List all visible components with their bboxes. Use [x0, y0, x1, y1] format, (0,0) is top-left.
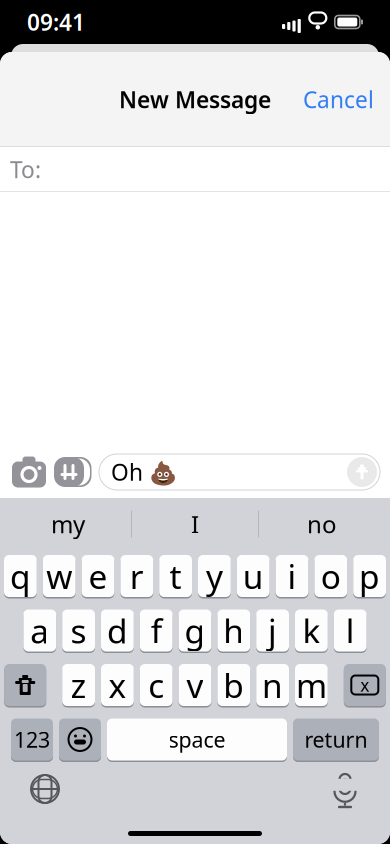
staticText: x — [360, 673, 369, 696]
staticText: y — [206, 554, 223, 598]
staticText: space — [168, 725, 225, 754]
button[interactable]: no — [259, 498, 385, 550]
button[interactable]: 123 — [11, 718, 53, 762]
staticText: z — [71, 663, 87, 707]
staticText: q — [10, 554, 31, 598]
staticText: h — [223, 608, 244, 653]
button[interactable]: n — [256, 664, 289, 707]
staticText: 09:41 — [27, 7, 85, 37]
button[interactable]: p — [353, 555, 386, 598]
staticText: s — [71, 608, 87, 653]
staticText: n — [262, 663, 283, 707]
button[interactable]: r — [120, 555, 153, 598]
staticText: I — [191, 508, 199, 540]
button[interactable]: Cancel — [287, 74, 390, 124]
staticText: 123 — [14, 725, 50, 754]
staticText: p — [359, 554, 380, 598]
button[interactable]: s — [62, 609, 95, 653]
button[interactable]: v — [179, 664, 211, 707]
staticText: b — [223, 663, 244, 707]
staticText: i — [287, 554, 296, 598]
staticText: r — [130, 554, 144, 598]
staticText: my — [51, 508, 85, 540]
button[interactable]: y — [198, 555, 231, 598]
button[interactable]: my — [5, 498, 131, 550]
staticText: Cancel — [303, 84, 374, 114]
staticText: u — [243, 554, 264, 598]
staticText: f — [151, 608, 162, 653]
staticText: e — [88, 554, 107, 598]
staticText: j — [268, 608, 277, 653]
staticText: v — [186, 663, 203, 707]
staticText: a — [30, 608, 49, 653]
button[interactable]: To: — [0, 147, 390, 192]
staticText: m — [296, 663, 327, 707]
staticText: t — [170, 554, 182, 598]
button[interactable]: space — [107, 718, 287, 762]
button[interactable]: q — [4, 555, 37, 598]
button[interactable]: h — [217, 609, 250, 653]
staticText: no — [307, 508, 337, 540]
button[interactable]: return — [293, 718, 379, 762]
button[interactable]: Camera — [7, 450, 51, 494]
staticText: k — [302, 608, 320, 653]
button[interactable]: b — [217, 664, 250, 707]
button[interactable]: i — [276, 555, 308, 598]
staticText: To: — [10, 154, 41, 184]
button[interactable]: g — [179, 609, 211, 653]
button[interactable]: f — [140, 609, 173, 653]
button[interactable]: t — [159, 555, 192, 598]
staticText: return — [304, 725, 367, 754]
staticText: x — [108, 663, 126, 707]
button[interactable]: l — [334, 609, 367, 653]
staticText: New Message — [119, 84, 271, 114]
button[interactable]: u — [237, 555, 270, 598]
button[interactable]: Apps — [51, 450, 95, 494]
button[interactable]: e — [82, 555, 114, 598]
button[interactable]: w — [43, 555, 76, 598]
button[interactable]: d — [101, 609, 134, 653]
button[interactable]: o — [314, 555, 347, 598]
button[interactable]: z — [62, 664, 95, 707]
staticText: g — [184, 608, 205, 653]
staticText: w — [46, 554, 72, 598]
button[interactable]: x — [101, 664, 134, 707]
button[interactable]: Send — [347, 457, 377, 487]
staticText: Oh 💩 — [111, 457, 177, 487]
button[interactable]: Delete — [344, 664, 386, 707]
button[interactable]: c — [140, 664, 173, 707]
staticText: o — [321, 554, 341, 598]
button[interactable]: Emoji — [59, 718, 101, 762]
button[interactable]: j — [256, 609, 289, 653]
button[interactable]: I — [132, 498, 258, 550]
button[interactable]: Next keyboard — [17, 765, 73, 813]
button[interactable]: Dictate — [317, 765, 373, 813]
button[interactable]: m — [295, 664, 328, 707]
button[interactable]: k — [295, 609, 328, 653]
staticText: d — [107, 608, 128, 653]
staticText: l — [346, 608, 355, 653]
button[interactable]: Shift — [4, 664, 46, 707]
button[interactable]: a — [23, 609, 56, 653]
staticText: c — [148, 663, 164, 707]
